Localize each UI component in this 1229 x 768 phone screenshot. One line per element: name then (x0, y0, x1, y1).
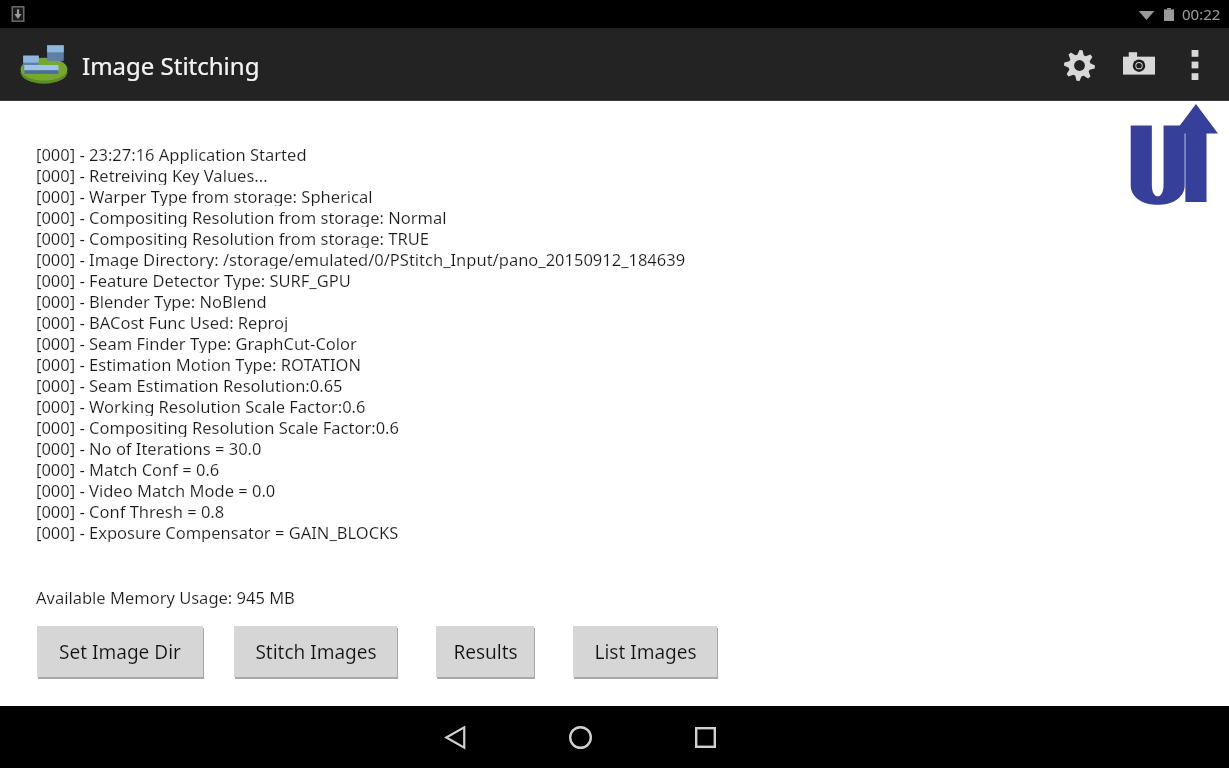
staticText: [000] - No of Iterations = 30.0 (36, 437, 262, 458)
button[interactable]: Stitch Images (234, 626, 397, 680)
staticText: Available Memory Usage: 945 MB (36, 586, 295, 608)
staticText: [000] - Compositing Resolution from stor… (36, 206, 447, 227)
staticText: [000] - Seam Estimation Resolution:0.65 (36, 374, 343, 395)
staticText: [000] - Working Resolution Scale Factor:… (36, 395, 366, 416)
staticText: [000] - Image Directory: /storage/emulat… (36, 248, 686, 269)
staticText: List Images (594, 639, 697, 665)
button[interactable]: More options (1169, 39, 1221, 91)
staticText: 00:22 (1182, 4, 1221, 24)
staticText: [000] - Compositing Resolution from stor… (36, 227, 429, 248)
button[interactable]: Home (545, 706, 615, 768)
button[interactable]: Results (436, 626, 534, 680)
staticText: Set Image Dir (59, 639, 181, 665)
staticText: [000] - Match Conf = 0.6 (36, 458, 220, 479)
button[interactable]: List Images (573, 626, 717, 680)
staticText: Image Stitching (82, 49, 260, 82)
button[interactable]: Back (420, 706, 490, 768)
staticText: [000] - BACost Func Used: Reproj (36, 311, 289, 332)
staticText: [000] - Estimation Motion Type: ROTATION (36, 353, 362, 374)
staticText: Results (453, 639, 518, 665)
button[interactable]: Set Image Dir (37, 626, 203, 680)
staticText: [000] - Exposure Compensator = GAIN_BLOC… (36, 521, 399, 542)
staticText: [000] - Compositing Resolution Scale Fac… (36, 416, 399, 437)
staticText: [000] - Blender Type: NoBlend (36, 290, 267, 311)
staticText: [000] - 23:27:16 Application Started (36, 143, 307, 164)
button[interactable]: Recent apps (670, 706, 740, 768)
staticText: [000] - Warper Type from storage: Spheri… (36, 185, 373, 206)
button[interactable]: Camera (1109, 35, 1169, 95)
staticText: [000] - Retreiving Key Values... (36, 164, 268, 185)
staticText: [000] - Feature Detector Type: SURF_GPU (36, 269, 351, 290)
staticText: [000] - Video Match Mode = 0.0 (36, 479, 276, 500)
staticText: Stitch Images (255, 639, 377, 665)
button[interactable]: Settings (1049, 35, 1109, 95)
staticText: [000] - Conf Thresh = 0.8 (36, 500, 225, 521)
staticText: [000] - Seam Finder Type: GraphCut-Color (36, 332, 357, 353)
